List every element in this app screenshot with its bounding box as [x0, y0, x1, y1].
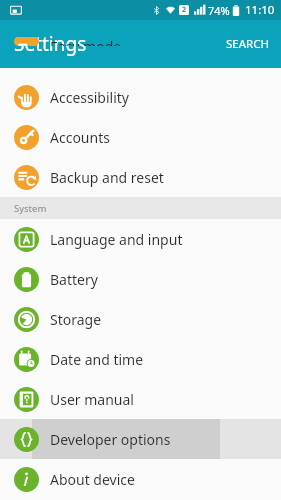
staticText: Backup and reset	[50, 168, 164, 187]
staticText: Settings	[14, 31, 87, 57]
staticText: 2	[182, 5, 187, 15]
staticText: SEARCH	[226, 36, 269, 52]
button[interactable]: Accounts	[0, 117, 281, 157]
staticText: Developer options	[50, 430, 171, 449]
button[interactable]: Battery	[0, 259, 281, 299]
button[interactable]: SEARCH	[214, 28, 281, 60]
staticText: Accessibility	[50, 88, 129, 107]
staticText: Date and time	[50, 350, 144, 369]
staticText: System	[14, 202, 47, 215]
staticText: User manual	[50, 390, 134, 409]
button[interactable]: Developer options	[0, 419, 281, 459]
staticText: Accounts	[50, 128, 110, 147]
button[interactable]: Storage	[0, 299, 281, 339]
button[interactable]: Easy mode	[0, 37, 281, 46]
staticText: About device	[50, 470, 135, 489]
staticText: 11:10	[245, 2, 275, 18]
staticText: Storage	[50, 310, 102, 329]
button[interactable]: Date and time	[0, 339, 281, 379]
staticText: 74%	[208, 3, 230, 18]
button[interactable]: Language and input	[0, 219, 281, 259]
button[interactable]: Accessibility	[0, 77, 281, 117]
button[interactable]: About device	[0, 459, 281, 499]
staticText: Language and input	[50, 230, 183, 249]
button[interactable]: User manual	[0, 379, 281, 419]
button[interactable]: Backup and reset	[0, 157, 281, 197]
staticText: Easy mode	[50, 37, 122, 46]
staticText: Battery	[50, 270, 98, 289]
